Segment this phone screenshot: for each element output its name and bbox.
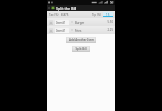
staticText: Burger xyxy=(75,21,85,25)
staticText: Item#1 xyxy=(56,29,66,33)
staticText: Tax (%) xyxy=(49,13,59,17)
staticText: 8.875 xyxy=(61,13,69,17)
button[interactable]: Item#1 xyxy=(55,28,69,33)
staticText: Split Bill xyxy=(75,47,87,51)
button[interactable]: Choose person xyxy=(70,28,73,32)
staticText: Split the Bill xyxy=(56,6,77,11)
button[interactable]: Add Another Item xyxy=(66,37,96,43)
staticText: 15 xyxy=(106,13,110,17)
staticText: 2.25 xyxy=(107,28,113,32)
staticText: Fries xyxy=(75,29,82,33)
button[interactable]: Choose person xyxy=(70,20,73,24)
button[interactable]: Fries xyxy=(74,28,106,33)
staticText: Item#1 xyxy=(56,21,66,25)
button[interactable]: Split the Bill xyxy=(47,5,115,11)
button[interactable]: Item#1 xyxy=(55,20,69,25)
staticText: Tip (%) xyxy=(92,13,102,17)
button[interactable]: 8.875 xyxy=(61,12,74,17)
button[interactable]: Remove item xyxy=(49,28,53,33)
button[interactable]: Split Bill xyxy=(72,46,90,52)
staticText: 5.50 xyxy=(107,20,113,24)
button[interactable]: Burger xyxy=(74,20,106,25)
staticText: Add Another Item xyxy=(69,38,94,42)
button[interactable]: Remove item xyxy=(49,20,53,25)
button[interactable]: 15 xyxy=(103,12,113,17)
